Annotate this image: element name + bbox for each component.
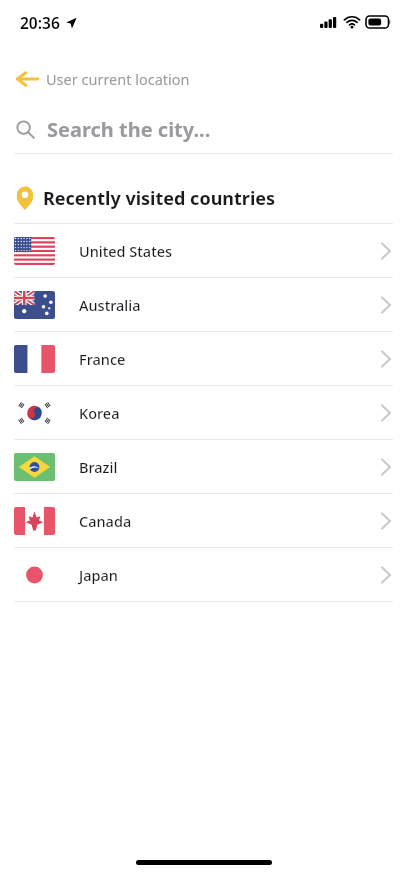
staticText: Australia bbox=[79, 295, 141, 315]
staticText: United States bbox=[79, 241, 173, 261]
staticText: Search the city... bbox=[47, 116, 211, 143]
button[interactable]: Korea bbox=[0, 386, 407, 439]
button[interactable]: Back bbox=[0, 62, 407, 96]
button[interactable]: Japan bbox=[0, 548, 407, 601]
other: Search bbox=[16, 120, 35, 139]
staticText: Brazil bbox=[79, 457, 118, 477]
button[interactable]: Canada bbox=[0, 494, 407, 547]
staticText: Canada bbox=[79, 511, 132, 531]
button[interactable]: Brazil bbox=[0, 440, 407, 493]
staticText: Korea bbox=[79, 403, 120, 423]
staticText: User current location bbox=[46, 69, 190, 89]
staticText: Recently visited countries bbox=[43, 186, 276, 211]
staticText: 20:36 bbox=[20, 12, 60, 33]
button[interactable]: France bbox=[0, 332, 407, 385]
staticText: Japan bbox=[79, 565, 118, 585]
button[interactable]: United States bbox=[0, 224, 407, 277]
staticText: France bbox=[79, 349, 126, 369]
button[interactable]: Australia bbox=[0, 278, 407, 331]
button[interactable]: Search bbox=[0, 116, 407, 153]
other: Back bbox=[14, 66, 40, 92]
